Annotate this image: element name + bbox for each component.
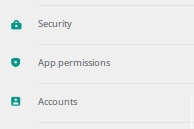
button[interactable]: Security xyxy=(0,5,194,44)
staticText: Accounts xyxy=(38,95,77,108)
button[interactable]: App permissions xyxy=(0,44,194,83)
button[interactable]: Accounts xyxy=(0,83,194,122)
staticText: App permissions xyxy=(38,56,110,69)
staticText: Security xyxy=(38,17,72,30)
